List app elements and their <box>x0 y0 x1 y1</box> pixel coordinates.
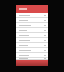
button[interactable] <box>16 43 48 48</box>
button[interactable] <box>16 13 48 18</box>
button[interactable] <box>16 48 48 53</box>
button[interactable] <box>16 38 48 43</box>
button[interactable] <box>16 53 48 58</box>
button[interactable] <box>16 33 48 38</box>
button[interactable] <box>16 28 48 33</box>
button[interactable] <box>16 18 48 23</box>
button[interactable] <box>16 23 48 28</box>
button[interactable] <box>16 58 48 60</box>
